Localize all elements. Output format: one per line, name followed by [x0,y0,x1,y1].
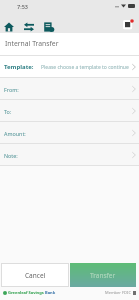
button[interactable]: Template: [0,56,139,78]
button[interactable]: Transfers [19,19,39,34]
staticText: Member FDIC [105,290,131,295]
staticText: Amount: [4,130,26,137]
staticText: Greenleaf Savings [8,290,45,295]
button[interactable]: Amount: [0,122,139,144]
button[interactable]: Cancel [1,263,69,287]
staticText: 7:53 [17,3,28,10]
staticText: To: [4,108,12,115]
staticText: Bank [45,290,56,295]
button[interactable]: Home [0,19,19,34]
button[interactable]: From: [0,78,139,100]
button[interactable]: Messages [121,18,135,32]
staticText: From: [4,86,19,93]
staticText: Cancel [25,271,46,280]
button[interactable]: To: [0,100,139,122]
staticText: Internal Transfer [5,39,59,48]
staticText: Transfer [90,271,116,280]
button[interactable]: Note: [0,144,139,166]
staticText: Note: [4,152,18,159]
button[interactable]: Reports [39,19,59,34]
button[interactable]: Transfer [70,263,136,287]
staticText: Template: [4,63,34,71]
staticText: Please choose a template to continue [41,64,129,71]
